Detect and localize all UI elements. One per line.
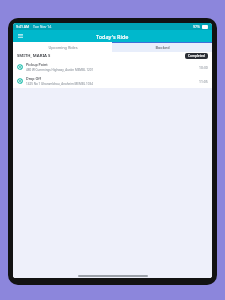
- staticText: 9:41 AM: [16, 24, 30, 29]
- staticText: Tue Nov 14: [33, 24, 52, 29]
- staticText: 97%: [193, 24, 200, 29]
- staticText: Drop Off: [26, 76, 42, 81]
- staticText: Booked: [155, 45, 170, 50]
- button[interactable]: Pickup Point: [13, 60, 212, 74]
- button[interactable]: Drop Off: [13, 74, 212, 88]
- staticText: Upcoming Rides: [48, 45, 78, 50]
- staticText: SMITH, MARIA S: [17, 53, 51, 59]
- staticText: Pickup Point: [26, 62, 48, 67]
- staticText: Completed: [188, 54, 205, 58]
- button[interactable]: Completed: [185, 53, 208, 59]
- staticText: 11:05: [199, 79, 208, 84]
- staticText: 480 W Cummings Highway, Austin MEMBL 120…: [26, 68, 94, 72]
- staticText: 1425 No 1 Gharambhau, Anaheim MEMBL 1034: [26, 82, 93, 86]
- button[interactable]: Booked: [112, 42, 212, 52]
- staticText: Today's Ride: [96, 33, 129, 40]
- button[interactable]: Open navigation menu: [16, 32, 24, 40]
- button[interactable]: Upcoming Rides: [13, 42, 112, 52]
- staticText: 10:30: [199, 65, 208, 70]
